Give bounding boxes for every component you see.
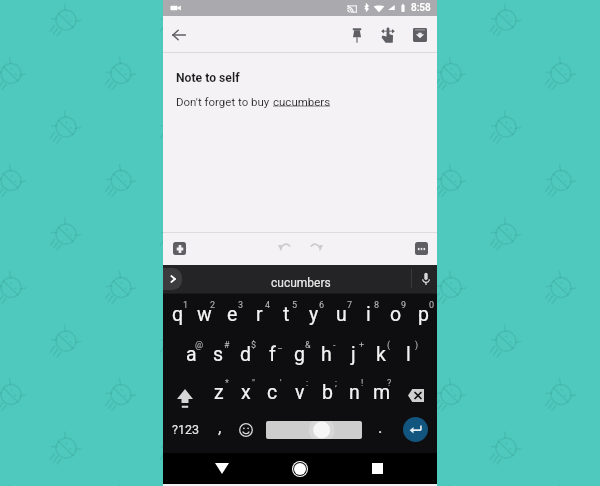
button[interactable]: More options bbox=[408, 233, 434, 263]
button[interactable]: Add bbox=[166, 233, 192, 263]
staticText: f bbox=[269, 343, 276, 366]
staticText: 8 bbox=[374, 300, 380, 311]
button[interactable]: m bbox=[368, 377, 395, 417]
staticText: k bbox=[376, 343, 386, 366]
button[interactable]: Shift bbox=[170, 378, 200, 418]
staticText: q bbox=[172, 303, 184, 326]
button[interactable]: g bbox=[286, 339, 313, 379]
staticText: j bbox=[351, 343, 356, 366]
staticText: u bbox=[336, 303, 347, 326]
button[interactable]: Back bbox=[165, 18, 193, 52]
staticText: z bbox=[214, 381, 224, 404]
button[interactable]: v bbox=[286, 377, 313, 417]
button[interactable]: u bbox=[328, 299, 355, 339]
staticText: $ bbox=[251, 340, 257, 351]
staticText: ?123 bbox=[172, 422, 199, 437]
button[interactable]: n bbox=[341, 377, 368, 417]
button[interactable]: Symbols bbox=[166, 410, 204, 449]
staticText: ' bbox=[280, 378, 282, 389]
button[interactable]: d bbox=[232, 339, 259, 379]
button[interactable]: b bbox=[314, 377, 341, 417]
button[interactable]: z bbox=[205, 377, 232, 417]
staticText: : bbox=[306, 378, 309, 389]
staticText: , bbox=[218, 417, 222, 437]
staticText: Note to self bbox=[176, 71, 240, 85]
staticText: 7 bbox=[347, 300, 353, 311]
staticText: i bbox=[366, 303, 371, 326]
button[interactable]: x bbox=[232, 377, 259, 417]
button[interactable]: Home bbox=[275, 453, 325, 484]
button[interactable]: p bbox=[410, 299, 437, 339]
staticText: 8:58 bbox=[411, 2, 431, 14]
staticText: ; bbox=[335, 378, 337, 389]
staticText: 9 bbox=[401, 300, 407, 311]
button[interactable]: Emoji bbox=[233, 410, 258, 449]
button[interactable]: Drag handle bbox=[374, 18, 402, 52]
staticText: + bbox=[359, 340, 365, 351]
staticText: p bbox=[418, 303, 429, 326]
staticText: m bbox=[373, 381, 391, 404]
staticText: r bbox=[256, 303, 263, 326]
button[interactable]: Archive bbox=[406, 18, 434, 52]
staticText: _ bbox=[278, 340, 283, 351]
staticText: ) bbox=[415, 340, 419, 351]
staticText: 3 bbox=[238, 300, 244, 311]
staticText: 5 bbox=[292, 300, 298, 311]
button[interactable]: Recents bbox=[352, 453, 402, 484]
button[interactable]: i bbox=[355, 299, 382, 339]
staticText: w bbox=[197, 303, 212, 326]
staticText: ( bbox=[387, 340, 391, 351]
button[interactable]: e bbox=[219, 299, 246, 339]
staticText: a bbox=[186, 343, 197, 366]
button[interactable]: t bbox=[273, 299, 300, 339]
button[interactable]: l bbox=[395, 339, 422, 379]
staticText: 0 bbox=[429, 300, 435, 311]
staticText: " bbox=[252, 378, 255, 389]
staticText: 2 bbox=[210, 300, 216, 311]
button[interactable]: a bbox=[178, 339, 205, 379]
staticText: g bbox=[294, 343, 305, 366]
button[interactable]: Back bbox=[197, 453, 247, 484]
staticText: * bbox=[225, 378, 229, 389]
button[interactable]: Pin bbox=[343, 18, 371, 52]
button[interactable]: . bbox=[368, 410, 393, 449]
button[interactable]: j bbox=[340, 339, 367, 379]
button[interactable]: Backspace bbox=[401, 375, 431, 415]
staticText: - bbox=[333, 340, 336, 351]
staticText: b bbox=[322, 381, 333, 404]
staticText: e bbox=[227, 303, 238, 326]
button[interactable]: Space bbox=[262, 410, 365, 449]
staticText: x bbox=[241, 381, 251, 404]
button[interactable]: cucumbers bbox=[228, 265, 373, 293]
button[interactable]: c bbox=[259, 377, 286, 417]
button[interactable]: , bbox=[207, 410, 232, 449]
button[interactable]: Enter bbox=[400, 410, 430, 449]
staticText: @ bbox=[195, 340, 204, 351]
button[interactable]: w bbox=[191, 299, 218, 339]
button[interactable]: Undo bbox=[272, 233, 298, 263]
button[interactable]: f bbox=[259, 339, 286, 379]
staticText: 4 bbox=[265, 300, 271, 311]
staticText: d bbox=[240, 343, 251, 366]
button[interactable]: Expand suggestions bbox=[163, 268, 182, 290]
button[interactable]: k bbox=[367, 339, 394, 379]
button[interactable]: h bbox=[313, 339, 340, 379]
staticText: v bbox=[295, 381, 305, 404]
button[interactable]: r bbox=[246, 299, 273, 339]
staticText: s bbox=[213, 343, 224, 366]
button[interactable]: Redo bbox=[303, 233, 329, 263]
staticText: c bbox=[267, 381, 278, 404]
button[interactable]: y bbox=[300, 299, 327, 339]
staticText: 1 bbox=[183, 300, 189, 311]
staticText: # bbox=[224, 340, 230, 351]
staticText: ! bbox=[361, 378, 364, 389]
staticText: & bbox=[305, 340, 311, 351]
button[interactable]: o bbox=[382, 299, 409, 339]
button[interactable]: s bbox=[205, 339, 232, 379]
button[interactable]: q bbox=[164, 299, 191, 339]
staticText: y bbox=[309, 303, 319, 326]
staticText: ? bbox=[387, 378, 392, 389]
button[interactable]: Voice input bbox=[415, 265, 437, 293]
staticText: o bbox=[390, 303, 402, 326]
staticText: l bbox=[406, 343, 411, 366]
